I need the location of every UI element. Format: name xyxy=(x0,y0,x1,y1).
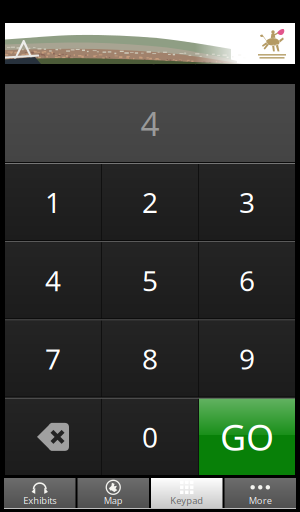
staticText: Keypad xyxy=(170,494,203,507)
staticText: 1 xyxy=(45,183,61,221)
button[interactable]: 6 xyxy=(199,242,295,318)
button[interactable]: Keypad xyxy=(151,478,222,508)
staticText: 5 xyxy=(142,262,158,299)
button[interactable]: 9 xyxy=(199,320,295,397)
button[interactable]: 4 xyxy=(5,242,101,318)
button[interactable]: More xyxy=(224,478,296,508)
staticText: Exhibits xyxy=(23,494,56,507)
staticText: 3 xyxy=(239,183,255,221)
button[interactable]: 7 xyxy=(5,320,101,397)
staticText: 8 xyxy=(142,340,158,377)
staticText: More xyxy=(249,494,272,507)
button[interactable]: Map xyxy=(77,478,149,508)
staticText: 6 xyxy=(239,262,255,299)
button[interactable]: 5 xyxy=(102,242,198,318)
button[interactable]: 8 xyxy=(102,320,198,397)
staticText: 7 xyxy=(45,340,61,377)
button[interactable]: Backspace xyxy=(5,399,101,475)
button[interactable]: 1 xyxy=(5,164,101,240)
staticText: Map xyxy=(104,494,123,507)
button[interactable]: 3 xyxy=(199,164,295,240)
button[interactable]: 2 xyxy=(102,164,198,240)
staticText: 9 xyxy=(239,340,255,377)
staticText: 4 xyxy=(45,262,61,299)
staticText: 2 xyxy=(142,183,158,221)
staticText: 0 xyxy=(142,418,158,455)
button[interactable]: 0 xyxy=(102,399,198,475)
button[interactable]: Exhibits xyxy=(4,478,75,508)
staticText: 4 xyxy=(140,101,159,145)
staticText: GO xyxy=(220,413,274,461)
button[interactable]: GO xyxy=(199,399,295,475)
